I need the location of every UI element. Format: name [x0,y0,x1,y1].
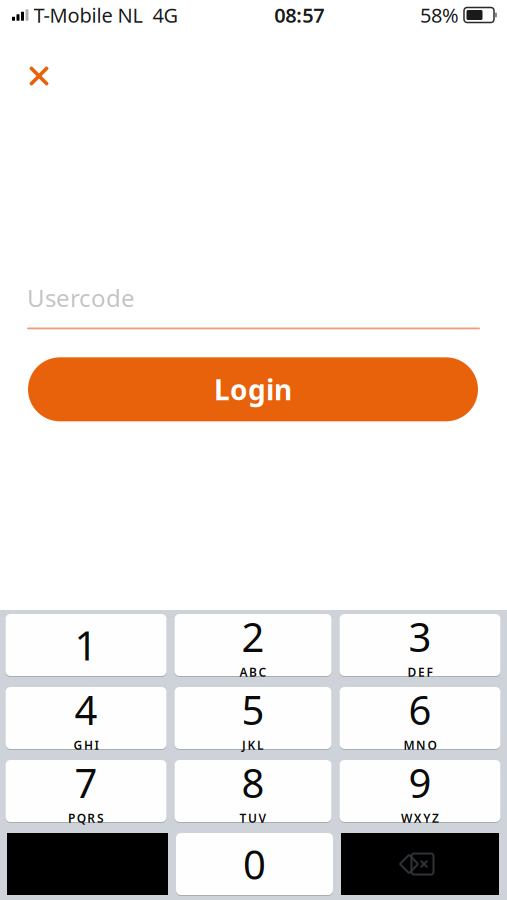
staticText: 08:57 [274,2,324,28]
staticText: T-Mobile NL [33,2,142,28]
button[interactable]: 4 [5,687,166,749]
staticText: Login [214,371,292,408]
staticText: 4 [74,683,97,736]
staticText: ABC [239,664,267,680]
button[interactable]: 1 [5,614,166,676]
button[interactable]: 3 [339,614,500,676]
button[interactable]: Login [0,357,507,421]
button[interactable]: 7 [5,760,166,822]
staticText: 4G [152,2,178,28]
staticText: 5 [241,683,264,736]
staticText: 58% [420,2,459,28]
button[interactable]: 6 [339,687,500,749]
staticText: 3 [408,610,431,663]
button[interactable]: 8 [174,760,331,822]
staticText: PQRS [68,810,104,826]
staticText: 1 [74,618,97,671]
staticText: JKL [242,737,264,753]
staticText: 0 [243,837,266,890]
button[interactable]: 0 [176,833,333,895]
staticText: MNO [403,737,437,753]
staticText: TUV [239,810,267,826]
button[interactable]: Delete [341,833,499,895]
staticText: Usercode [27,282,135,314]
staticText: GHI [73,737,99,753]
staticText: 9 [408,756,431,809]
button[interactable]: 2 [174,614,331,676]
staticText: 6 [408,683,431,736]
staticText: DEF [407,664,433,680]
staticText: WXYZ [401,810,439,826]
staticText: 2 [241,610,264,663]
button[interactable]: Close [22,59,56,93]
staticText: 7 [74,756,97,809]
button[interactable]: 5 [174,687,331,749]
staticText: 8 [241,756,264,809]
button[interactable]: 9 [339,760,500,822]
